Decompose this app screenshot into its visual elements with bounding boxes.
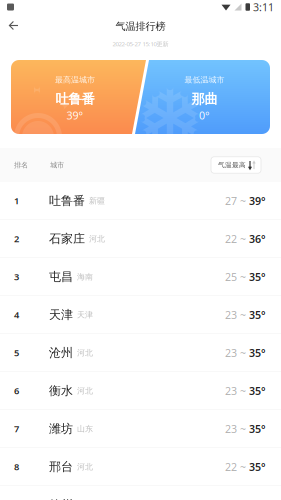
staticText: 7 <box>14 423 19 435</box>
button[interactable]: 1 <box>0 182 281 220</box>
staticText: 36° <box>249 232 266 246</box>
staticText: 河北 <box>77 462 93 472</box>
staticText: 0° <box>199 108 210 122</box>
staticText: 天津 <box>77 310 93 320</box>
staticText: 海南 <box>77 272 93 282</box>
staticText: 22 ~ <box>225 460 249 474</box>
staticText: 吐鲁番 <box>55 91 94 107</box>
button[interactable]: 5 <box>0 334 281 372</box>
staticText: 邢台 <box>49 459 73 474</box>
staticText: 沧州 <box>49 345 73 360</box>
staticText: 23 ~ <box>225 384 249 398</box>
staticText: 吐鲁番 <box>49 193 85 208</box>
button[interactable]: 气温最高 <box>211 157 261 173</box>
staticText: 3:11 <box>253 0 274 14</box>
staticText: 河北 <box>89 234 105 244</box>
staticText: 35° <box>249 422 266 436</box>
staticText: 新疆 <box>89 196 105 206</box>
staticText: 35° <box>249 460 266 474</box>
staticText: 排名 <box>14 160 28 170</box>
staticText: 23 ~ <box>225 422 249 436</box>
button[interactable]: 7 <box>0 410 281 448</box>
staticText: 那曲 <box>191 91 217 107</box>
button[interactable]: 6 <box>0 372 281 410</box>
staticText: 6 <box>14 385 19 397</box>
staticText: 气温最高 <box>218 161 246 169</box>
staticText: 2022-05-27 15:10更新 <box>112 40 168 48</box>
staticText: 屯昌 <box>49 269 73 284</box>
staticText: 39° <box>249 194 266 208</box>
staticText: 气温排行榜 <box>115 20 165 33</box>
staticText: 最低温城市 <box>184 75 224 85</box>
staticText: 23 ~ <box>225 308 249 322</box>
staticText: 1 <box>14 195 19 207</box>
staticText: 23 ~ <box>225 346 249 360</box>
staticText: 城市 <box>50 160 64 170</box>
staticText: 35° <box>249 384 266 398</box>
staticText: 2 <box>14 233 19 245</box>
staticText: 4 <box>14 309 19 321</box>
staticText: 35° <box>249 270 266 284</box>
staticText: 35° <box>249 346 266 360</box>
staticText: 石家庄 <box>49 231 85 246</box>
staticText: 39° <box>66 108 83 122</box>
button[interactable]: 4 <box>0 296 281 334</box>
staticText: 27 ~ <box>225 194 249 208</box>
button[interactable]: 8 <box>0 448 281 486</box>
staticText: 5 <box>14 347 19 359</box>
staticText: 衡水 <box>49 383 73 398</box>
staticText: 35° <box>249 308 266 322</box>
staticText: 潍坊 <box>49 421 73 436</box>
button[interactable]: 2 <box>0 220 281 258</box>
staticText: 22 ~ <box>225 232 249 246</box>
staticText: 河北 <box>77 348 93 358</box>
staticText: 3 <box>14 271 19 283</box>
button[interactable]: Back <box>0 15 29 39</box>
staticText: 德州 <box>49 497 73 500</box>
staticText: 天津 <box>49 307 73 322</box>
staticText: 最高温城市 <box>55 75 95 85</box>
button[interactable]: 3 <box>0 258 281 296</box>
button[interactable]: 9 <box>0 486 281 500</box>
staticText: 河北 <box>77 386 93 396</box>
staticText: 25 ~ <box>225 270 249 284</box>
staticText: 山东 <box>77 424 93 434</box>
staticText: 8 <box>14 461 19 473</box>
